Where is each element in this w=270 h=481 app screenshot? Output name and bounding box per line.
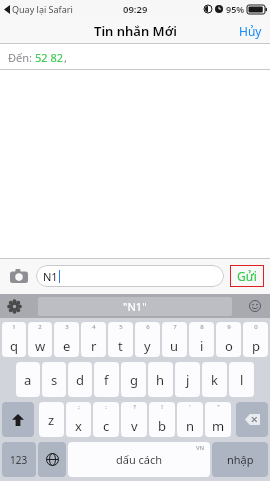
staticText: 52 82 <box>35 50 64 65</box>
staticText: ' <box>189 403 191 411</box>
staticText: y <box>144 337 151 355</box>
button[interactable]: ! <box>149 402 175 437</box>
staticText: 4 <box>92 323 96 331</box>
button[interactable]: 7 <box>162 322 187 357</box>
button[interactable]: " <box>205 402 231 437</box>
staticText: i <box>200 337 204 355</box>
button[interactable]: nhập <box>212 442 268 477</box>
staticText: 09:29 <box>123 3 148 16</box>
staticText: a <box>24 371 32 389</box>
staticText: Đến: <box>8 50 35 65</box>
button[interactable]: z <box>39 402 64 437</box>
staticText: t <box>118 337 123 355</box>
staticText: 8 <box>200 323 204 331</box>
button[interactable]: Xóa <box>236 402 268 437</box>
staticText: ? <box>133 403 136 411</box>
staticText: 2 <box>38 323 42 331</box>
staticText: l <box>240 371 244 389</box>
button[interactable]: : <box>93 402 119 437</box>
staticText: p <box>252 337 260 355</box>
staticText: r <box>91 337 97 355</box>
button[interactable]: Gửi <box>230 265 264 287</box>
button[interactable]: Quay lại Safari <box>4 3 73 15</box>
staticText: m <box>212 417 225 435</box>
staticText: 0 <box>254 323 258 331</box>
staticText: 9 <box>227 323 231 331</box>
staticText: ! <box>161 403 163 411</box>
staticText: z <box>48 411 55 429</box>
button[interactable]: 3 <box>54 322 79 357</box>
staticText: f <box>104 371 109 389</box>
staticText: k <box>211 371 218 389</box>
staticText: j <box>186 371 190 389</box>
staticText: VN <box>196 444 205 452</box>
button[interactable]: Chụp ảnh <box>6 263 32 289</box>
button[interactable]: ? <box>121 402 147 437</box>
staticText: Gửi <box>237 268 257 284</box>
staticText: 6 <box>146 323 150 331</box>
staticText: s <box>51 371 58 389</box>
button[interactable]: ' <box>177 402 203 437</box>
staticText: 5 <box>119 323 123 331</box>
staticText: , <box>64 50 67 65</box>
staticText: Hủy <box>239 23 262 39</box>
button[interactable]: 1 <box>2 322 26 357</box>
staticText: 123 <box>10 453 28 467</box>
button[interactable]: "N1" <box>38 297 232 316</box>
button[interactable]: Đổi bàn phím <box>38 442 66 477</box>
staticText: dấu cách <box>116 452 163 467</box>
staticText: ; <box>78 403 80 411</box>
button[interactable]: j <box>175 362 200 397</box>
button[interactable]: dấu cách <box>68 442 210 477</box>
button[interactable]: Cài đặt bàn phím <box>4 296 24 316</box>
staticText: "N1" <box>123 299 147 314</box>
button[interactable]: 2 <box>28 322 52 357</box>
button[interactable]: 8 <box>189 322 214 357</box>
button[interactable]: g <box>121 362 146 397</box>
staticText: 95% <box>226 3 245 15</box>
staticText: w <box>35 337 46 355</box>
staticText: e <box>63 337 71 355</box>
button[interactable]: d <box>68 362 92 397</box>
staticText: x <box>75 417 82 435</box>
staticText: g <box>130 371 138 389</box>
button[interactable]: 4 <box>81 322 106 357</box>
button[interactable]: f <box>94 362 119 397</box>
staticText: Tin nhắn Mới <box>94 22 177 40</box>
button[interactable]: Biểu tượng cảm xúc <box>245 296 265 316</box>
button[interactable]: Hủy <box>231 19 270 43</box>
button[interactable]: k <box>202 362 227 397</box>
staticText: b <box>158 417 166 435</box>
staticText: " <box>217 403 220 411</box>
button[interactable]: 9 <box>216 322 241 357</box>
staticText: 3 <box>65 323 69 331</box>
staticText: o <box>225 337 233 355</box>
staticText: q <box>10 337 18 355</box>
button[interactable]: 123 <box>2 442 36 477</box>
staticText: u <box>170 337 179 355</box>
button[interactable]: s <box>42 362 66 397</box>
staticText: 7 <box>173 323 177 331</box>
button[interactable]: h <box>148 362 173 397</box>
staticText: d <box>76 371 84 389</box>
button[interactable]: 0 <box>243 322 268 357</box>
staticText: Quay lại Safari <box>12 3 73 15</box>
button[interactable]: N1 <box>36 265 224 287</box>
staticText: 1 <box>12 323 16 331</box>
staticText: : <box>105 403 107 411</box>
staticText: n <box>186 417 195 435</box>
button[interactable]: 5 <box>108 322 133 357</box>
button[interactable]: ; <box>66 402 91 437</box>
button[interactable]: l <box>229 362 254 397</box>
button[interactable]: Shift <box>2 402 34 437</box>
staticText: N1 <box>43 269 58 284</box>
staticText: v <box>131 417 138 435</box>
button[interactable]: 6 <box>135 322 160 357</box>
button[interactable]: a <box>16 362 40 397</box>
staticText: c <box>103 417 110 435</box>
staticText: nhập <box>227 452 254 467</box>
staticText: h <box>156 371 165 389</box>
